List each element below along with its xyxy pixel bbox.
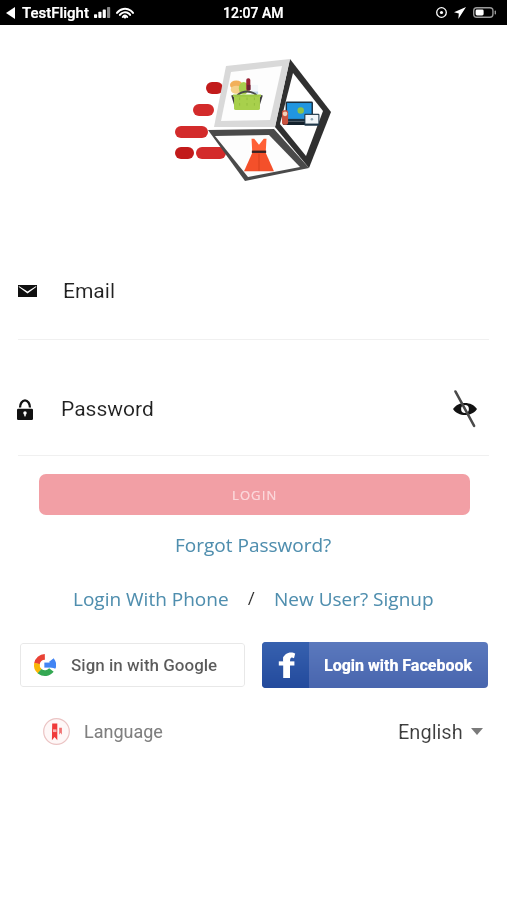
staticText: Email xyxy=(63,279,115,304)
button[interactable]: Login With Phone xyxy=(69,584,233,612)
button[interactable]: LOGIN xyxy=(39,474,470,515)
staticText: Login with Facebook xyxy=(324,656,473,675)
button[interactable]: Password xyxy=(0,382,507,436)
button[interactable]: Sign in with Google xyxy=(20,643,245,687)
staticText: / xyxy=(233,585,270,611)
button[interactable]: Login with Facebook xyxy=(262,642,488,688)
staticText: Sign in with Google xyxy=(71,655,218,675)
button[interactable]: Email xyxy=(0,264,507,318)
staticText: Language xyxy=(84,721,163,742)
staticText: Password xyxy=(61,397,154,422)
staticText: Login With Phone xyxy=(73,586,229,610)
staticText: 12:07 AM xyxy=(223,5,284,21)
button[interactable]: Show password xyxy=(444,388,486,430)
staticText: TestFlight xyxy=(22,4,89,22)
button[interactable]: Language xyxy=(43,710,483,752)
button[interactable]: New User? Signup xyxy=(270,584,438,612)
staticText: LOGIN xyxy=(232,486,278,504)
staticText: New User? Signup xyxy=(274,586,434,610)
staticText: Forgot Password? xyxy=(175,532,332,558)
staticText: English xyxy=(398,720,463,743)
button[interactable]: Forgot Password? xyxy=(169,530,338,560)
